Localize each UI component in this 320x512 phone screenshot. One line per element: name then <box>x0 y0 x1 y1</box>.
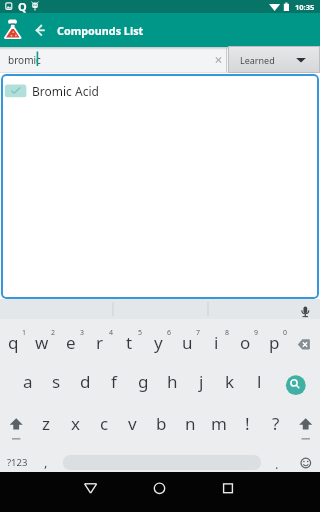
staticText: , <box>44 453 48 471</box>
button[interactable] <box>293 410 319 440</box>
staticText: d <box>80 370 91 393</box>
button[interactable]: w <box>28 325 56 359</box>
staticText: k <box>225 370 235 393</box>
staticText: z <box>42 412 50 435</box>
staticText: Compounds List <box>57 23 144 38</box>
staticText: 5 <box>138 328 143 338</box>
button[interactable] <box>208 48 228 72</box>
staticText: l <box>257 370 262 393</box>
button[interactable] <box>214 476 244 502</box>
button[interactable]: c <box>90 406 118 440</box>
staticText: h <box>167 370 178 393</box>
button[interactable]: x <box>61 406 89 440</box>
button[interactable]: o <box>231 325 259 359</box>
button[interactable]: t <box>115 325 143 359</box>
staticText: 2 <box>51 328 56 338</box>
staticText: x <box>71 412 80 435</box>
button[interactable] <box>228 46 320 73</box>
button[interactable] <box>282 371 310 399</box>
staticText: ! <box>245 412 250 435</box>
staticText: 7 <box>196 328 201 338</box>
button[interactable]: z <box>32 406 60 440</box>
staticText: 10:35 <box>295 2 315 12</box>
staticText: u <box>182 331 193 354</box>
button[interactable]: b <box>147 406 175 440</box>
staticText: r <box>96 331 104 354</box>
button[interactable]: i <box>202 325 230 359</box>
staticText: 6 <box>167 328 172 338</box>
button[interactable] <box>30 16 56 44</box>
button[interactable] <box>290 328 320 360</box>
staticText: bromic <box>8 53 41 67</box>
staticText: t <box>126 331 133 354</box>
button[interactable] <box>76 476 106 502</box>
button[interactable]: v <box>118 406 146 440</box>
staticText: 8 <box>225 328 230 338</box>
staticText: Bromic Acid <box>32 83 99 99</box>
button[interactable]: y <box>144 325 172 359</box>
button[interactable]: g <box>129 364 157 398</box>
staticText: 3 <box>80 328 85 338</box>
button[interactable]: m <box>205 406 233 440</box>
button[interactable]: d <box>71 364 99 398</box>
button[interactable]: . <box>267 454 287 474</box>
button[interactable]: a <box>14 364 42 398</box>
button[interactable]: ! <box>233 406 261 440</box>
staticText: Q <box>18 0 27 14</box>
button[interactable] <box>145 476 175 502</box>
button[interactable]: j <box>187 364 215 398</box>
staticText: Learned <box>240 54 275 66</box>
staticText: q <box>8 331 19 354</box>
staticText: a <box>23 370 33 393</box>
staticText: f <box>111 370 117 393</box>
staticText: b <box>156 412 167 435</box>
staticText: w <box>35 331 49 354</box>
staticText: g <box>138 370 149 393</box>
staticText: 4 <box>109 328 114 338</box>
button[interactable]: l <box>245 364 273 398</box>
button[interactable]: ? <box>262 406 290 440</box>
button[interactable]: , <box>36 452 56 472</box>
button[interactable] <box>0 47 320 73</box>
staticText: 0 <box>283 328 288 338</box>
staticText: e <box>66 331 76 354</box>
staticText: ?123 <box>7 456 28 469</box>
button[interactable]: h <box>158 364 186 398</box>
button[interactable]: k <box>216 364 244 398</box>
staticText: ? <box>272 412 280 435</box>
button[interactable]: u <box>173 325 201 359</box>
staticText: 1 <box>22 328 27 338</box>
staticText: v <box>128 412 137 435</box>
button[interactable]: ?123 <box>3 452 31 472</box>
button[interactable] <box>294 452 317 472</box>
staticText: . <box>275 455 279 473</box>
button[interactable]: f <box>100 364 128 398</box>
staticText: s <box>52 370 61 393</box>
staticText: m <box>211 412 227 435</box>
staticText: p <box>269 331 280 354</box>
button[interactable]: n <box>176 406 204 440</box>
staticText: n <box>185 412 196 435</box>
button[interactable] <box>4 410 30 440</box>
button[interactable]: p <box>260 325 288 359</box>
button[interactable]: e <box>57 325 85 359</box>
staticText: j <box>199 370 204 393</box>
button[interactable] <box>293 300 317 319</box>
button[interactable]: r <box>86 325 114 359</box>
staticText: y <box>154 331 163 354</box>
staticText: i <box>214 331 219 354</box>
button[interactable]: q <box>0 325 27 359</box>
staticText: c <box>100 412 109 435</box>
staticText: 9 <box>254 328 259 338</box>
button[interactable]: s <box>42 364 70 398</box>
button[interactable] <box>3 79 317 101</box>
staticText: o <box>240 331 251 354</box>
